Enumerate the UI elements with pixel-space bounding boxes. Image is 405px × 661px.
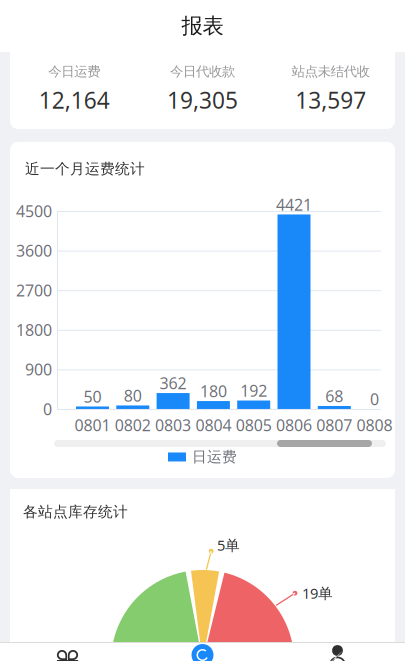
staticText: 192 [240,380,267,401]
staticText: 900 [25,359,52,380]
staticText: 0801 [74,414,110,435]
staticText: 0805 [236,414,272,435]
staticText: 4500 [16,200,52,221]
staticText: 0807 [316,414,352,435]
staticText: 今日运费 [48,63,100,80]
staticText: 1800 [16,319,52,340]
staticText: 0804 [195,414,231,435]
staticText: 2700 [16,279,52,301]
staticText: 报表 [181,13,223,39]
staticText: 站点未结代收 [292,63,370,80]
staticText: 0802 [115,414,151,435]
staticText: 近一个月运费统计 [25,160,145,178]
staticText: 5单 [217,535,240,555]
button[interactable]: Messages [0,643,135,661]
staticText: 13,597 [295,85,366,115]
staticText: 0803 [155,414,191,435]
staticText: 各站点库存统计 [23,503,128,521]
staticText: 0 [196,19,209,49]
button[interactable]: Profile [270,643,405,661]
staticText: 19,305 [167,85,238,115]
staticText: 19单 [302,583,333,603]
staticText: 0806 [276,414,312,435]
button[interactable]: Reports [135,643,270,661]
staticText: 3600 [16,240,52,261]
staticText: 今日代收款 [170,63,235,80]
staticText: 日运费 [192,448,237,466]
staticText: 80 [124,385,142,406]
staticText: 50 [83,386,101,407]
staticText: 4421 [276,194,312,215]
staticText: 0 [43,398,52,419]
staticText: 68 [325,385,343,407]
staticText: 0 [370,388,379,409]
staticText: 180 [200,380,227,402]
staticText: 362 [160,372,187,394]
staticText: 12,164 [39,85,110,115]
staticText: 0808 [357,414,393,435]
